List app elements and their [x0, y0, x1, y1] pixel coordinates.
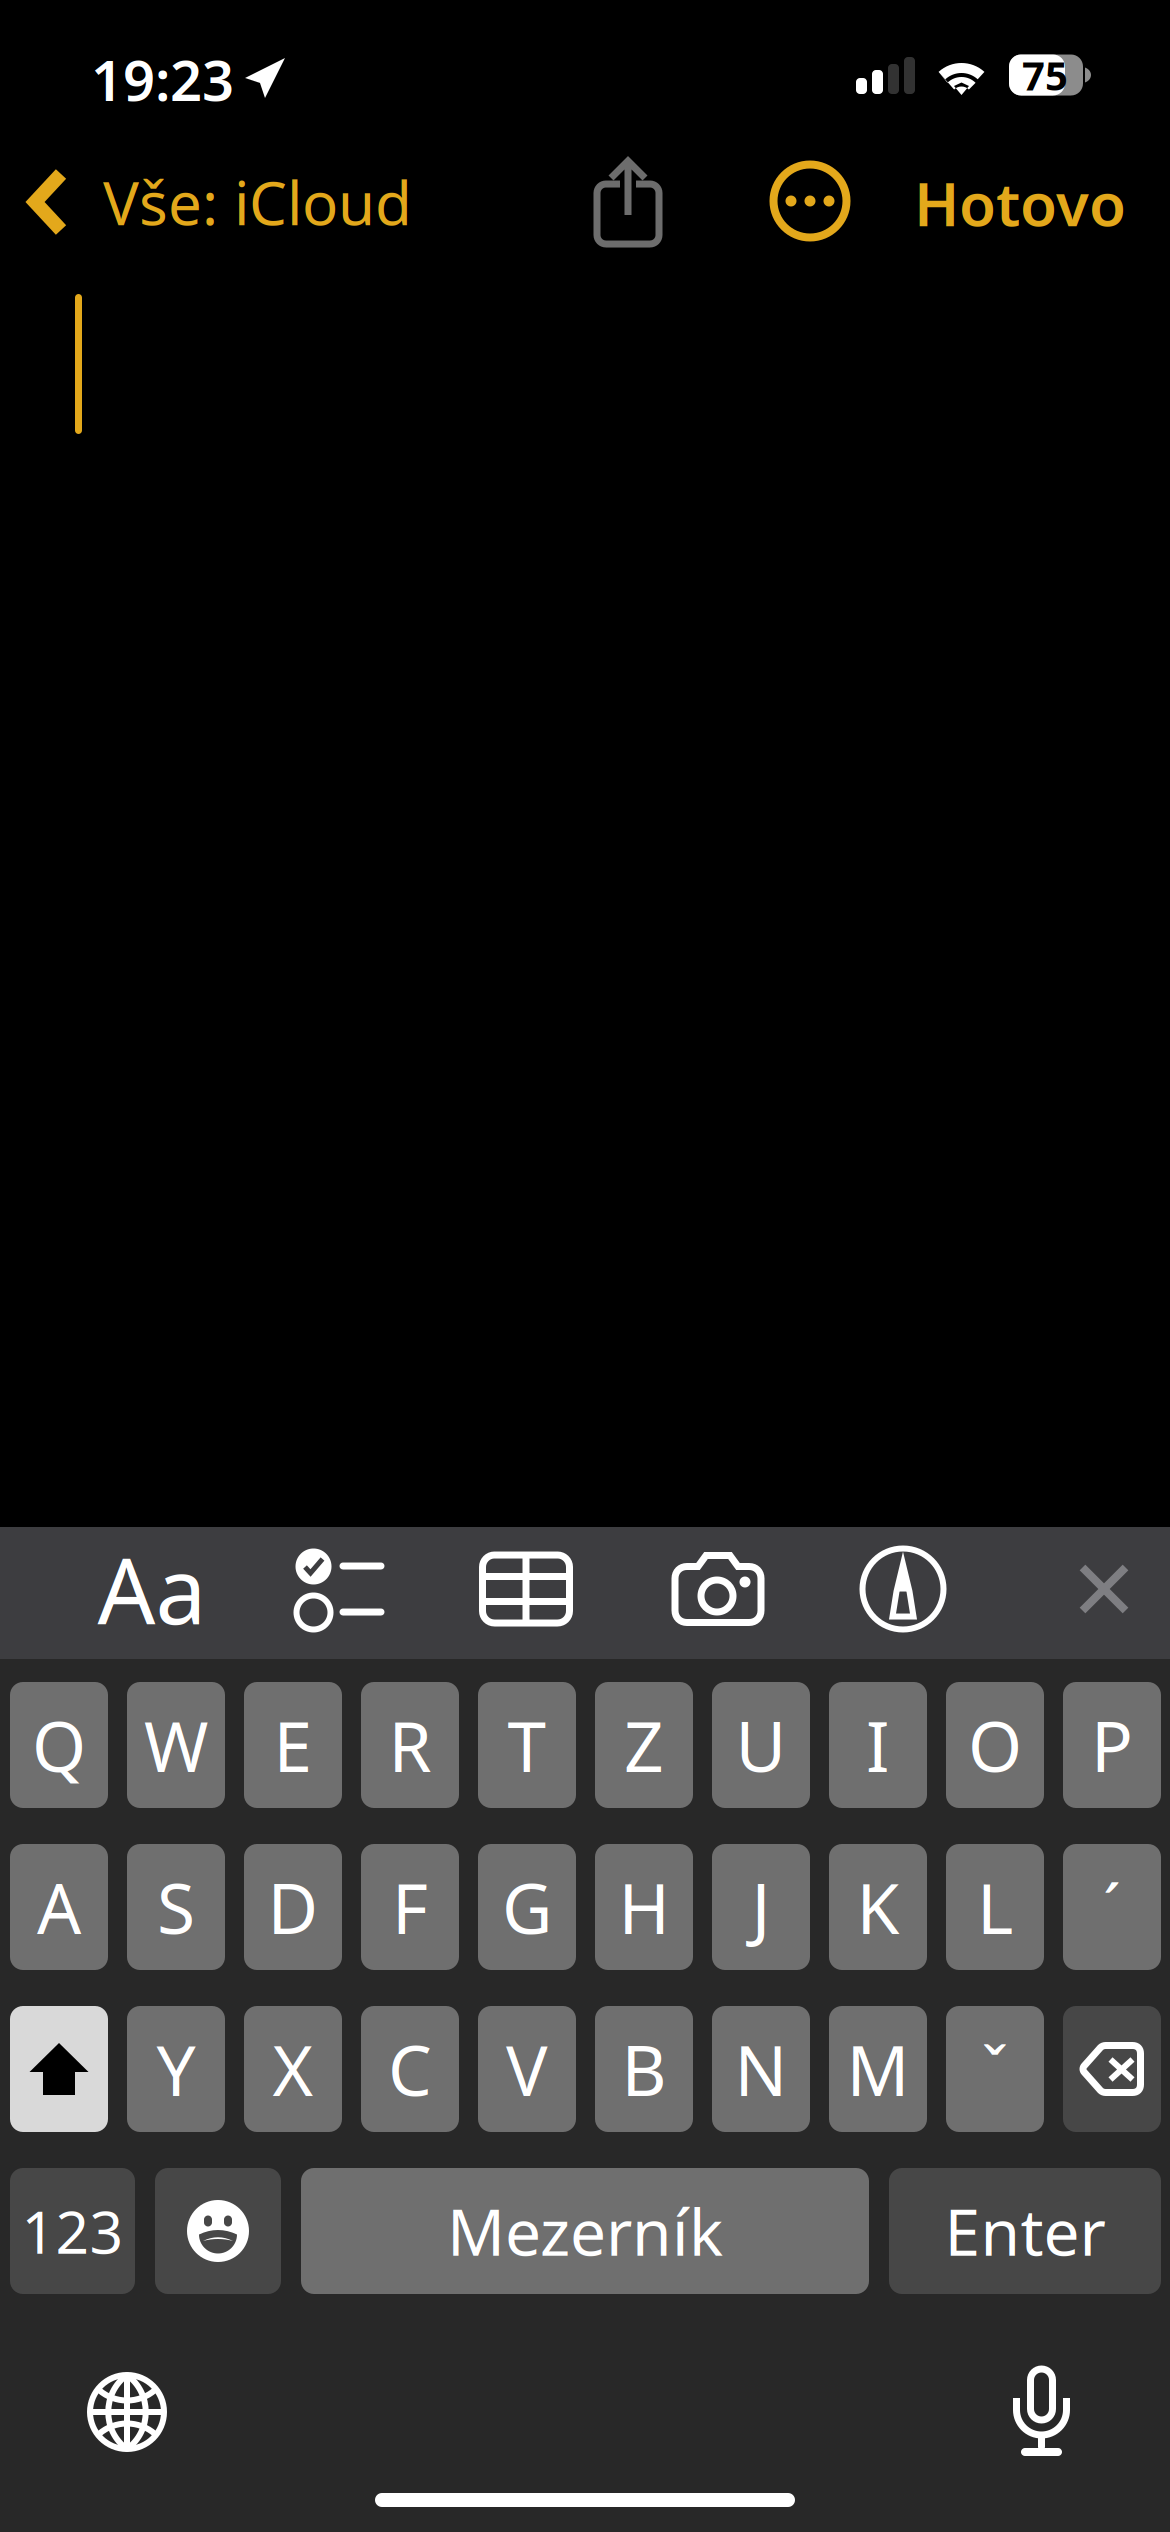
button[interactable]: S: [127, 1844, 225, 1970]
staticText: U: [735, 1699, 786, 1791]
button[interactable]: N: [712, 2006, 810, 2132]
staticText: Q: [32, 1699, 86, 1791]
button[interactable]: O: [946, 1682, 1044, 1808]
button[interactable]: H: [595, 1844, 693, 1970]
button[interactable]: Camera: [643, 1523, 793, 1655]
staticText: Mezerník: [447, 2188, 723, 2273]
button[interactable]: J: [712, 1844, 810, 1970]
button[interactable]: Y: [127, 2006, 225, 2132]
staticText: Y: [156, 2023, 195, 2115]
button[interactable]: Enter: [889, 2168, 1161, 2294]
button[interactable]: Z: [595, 1682, 693, 1808]
staticText: T: [507, 1699, 546, 1791]
button[interactable]: Shift: [10, 2006, 108, 2132]
staticText: Hotovo: [914, 163, 1126, 243]
staticText: D: [267, 1861, 318, 1953]
button[interactable]: Q: [10, 1682, 108, 1808]
button[interactable]: V: [478, 2006, 576, 2132]
staticText: P: [1091, 1699, 1133, 1791]
button[interactable]: Table: [451, 1523, 601, 1655]
staticText: E: [273, 1699, 312, 1791]
staticText: R: [388, 1699, 431, 1791]
staticText: 19:23: [91, 42, 234, 116]
staticText: W: [144, 1699, 208, 1791]
button[interactable]: P: [1063, 1682, 1161, 1808]
button[interactable]: F: [361, 1844, 459, 1970]
staticText: 75: [1022, 48, 1068, 101]
button[interactable]: Next keyboard: [88, 2373, 166, 2451]
button[interactable]: L: [946, 1844, 1044, 1970]
staticText: ˇ: [981, 2026, 1008, 2111]
button[interactable]: Hide keyboard: [1029, 1523, 1170, 1655]
staticText: J: [751, 1861, 770, 1953]
staticText: O: [968, 1699, 1022, 1791]
staticText: M: [846, 2023, 909, 2115]
button[interactable]: ˇ: [946, 2006, 1044, 2132]
staticText: N: [734, 2023, 787, 2115]
button[interactable]: T: [478, 1682, 576, 1808]
button[interactable]: U: [712, 1682, 810, 1808]
staticText: Aa: [97, 1529, 206, 1649]
staticText: Enter: [944, 2188, 1105, 2273]
button[interactable]: 123: [10, 2168, 135, 2294]
staticText: F: [392, 1861, 428, 1953]
staticText: V: [506, 2023, 548, 2115]
button[interactable]: Delete: [1063, 2006, 1161, 2132]
button[interactable]: Emoji: [155, 2168, 281, 2294]
button[interactable]: C: [361, 2006, 459, 2132]
button[interactable]: A: [10, 1844, 108, 1970]
staticText: 123: [21, 2192, 123, 2270]
button[interactable]: G: [478, 1844, 576, 1970]
button[interactable]: More options: [756, 147, 864, 255]
button[interactable]: Hotovo: [900, 147, 1140, 259]
button[interactable]: E: [244, 1682, 342, 1808]
button[interactable]: Dictation: [1013, 2366, 1070, 2456]
button[interactable]: Vše: iCloud: [28, 146, 428, 258]
button[interactable]: Format: [77, 1523, 227, 1655]
button[interactable]: W: [127, 1682, 225, 1808]
staticText: K: [856, 1861, 899, 1953]
staticText: S: [157, 1861, 195, 1953]
staticText: ´: [1103, 1864, 1121, 1949]
staticText: L: [977, 1861, 1013, 1953]
button[interactable]: I: [829, 1682, 927, 1808]
staticText: I: [866, 1699, 890, 1791]
staticText: Vše: iCloud: [103, 162, 412, 242]
button[interactable]: D: [244, 1844, 342, 1970]
button[interactable]: R: [361, 1682, 459, 1808]
button[interactable]: X: [244, 2006, 342, 2132]
button[interactable]: M: [829, 2006, 927, 2132]
button[interactable]: ´: [1063, 1844, 1161, 1970]
button[interactable]: Checklist: [265, 1523, 415, 1655]
staticText: B: [621, 2023, 666, 2115]
button[interactable]: K: [829, 1844, 927, 1970]
staticText: A: [37, 1861, 81, 1953]
button[interactable]: Share: [572, 146, 684, 258]
button[interactable]: Markup: [828, 1523, 978, 1655]
staticText: C: [388, 2023, 432, 2115]
staticText: G: [502, 1861, 552, 1953]
staticText: Z: [624, 1699, 664, 1791]
button[interactable]: B: [595, 2006, 693, 2132]
button[interactable]: Mezerník: [301, 2168, 869, 2294]
staticText: X: [272, 2023, 313, 2115]
staticText: H: [618, 1861, 669, 1953]
